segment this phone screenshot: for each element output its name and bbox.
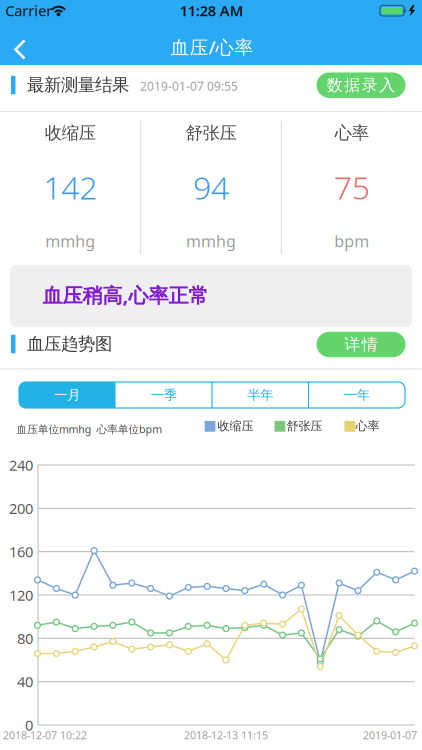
- staticText: 血压稍高,心率正常: [42, 282, 208, 308]
- staticText: Carrier: [5, 1, 52, 20]
- staticText: 75: [334, 166, 370, 208]
- staticText: 240: [9, 455, 33, 475]
- staticText: 数据录入: [327, 75, 395, 95]
- staticText: 收缩压: [217, 419, 253, 433]
- button[interactable]: 数据录入: [316, 72, 405, 98]
- staticText: 最新测量结果: [27, 74, 129, 96]
- button[interactable]: Back: [11, 31, 41, 68]
- staticText: 142: [43, 166, 97, 208]
- staticText: 80: [17, 629, 33, 648]
- staticText: 0: [25, 715, 33, 735]
- button[interactable]: 半年: [212, 382, 308, 408]
- button[interactable]: 一月: [19, 382, 115, 408]
- staticText: 心率: [355, 419, 379, 433]
- staticText: 120: [9, 585, 33, 605]
- staticText: 舒张压: [286, 419, 322, 433]
- staticText: 心率: [335, 122, 369, 144]
- staticText: 血压趋势图: [27, 333, 112, 355]
- staticText: 2018-12-13 11:15: [184, 728, 268, 742]
- staticText: 160: [9, 542, 33, 561]
- staticText: 2018-12-07 10:22: [3, 728, 87, 742]
- staticText: 40: [17, 672, 33, 691]
- button[interactable]: 一季: [116, 382, 212, 408]
- button[interactable]: 一年: [309, 382, 405, 408]
- staticText: 详情: [344, 335, 378, 354]
- staticText: 血压/心率: [170, 35, 253, 59]
- staticText: 一季: [151, 387, 177, 403]
- staticText: 2019-01-07 09:55: [140, 78, 238, 94]
- staticText: 半年: [247, 387, 273, 403]
- staticText: 一年: [344, 387, 370, 403]
- staticText: 收缩压: [45, 122, 96, 144]
- staticText: 一月: [54, 387, 80, 403]
- staticText: 94: [193, 166, 229, 208]
- staticText: 舒张压: [185, 122, 236, 144]
- staticText: 11:28 AM: [180, 1, 244, 20]
- staticText: 血压单位mmhg 心率单位bpm: [17, 422, 162, 436]
- button[interactable]: 详情: [316, 332, 405, 357]
- staticText: mmhg: [45, 230, 95, 252]
- staticText: 200: [9, 499, 33, 518]
- staticText: 2019-01-07: [363, 728, 417, 742]
- staticText: bpm: [334, 230, 369, 252]
- staticText: mmhg: [186, 230, 236, 252]
